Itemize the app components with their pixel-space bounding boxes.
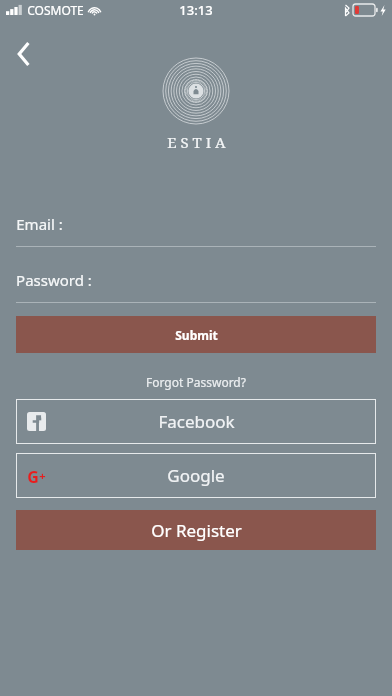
- button[interactable]: Back: [2, 34, 46, 74]
- staticText: E S T I A: [167, 132, 226, 152]
- staticText: Password :: [16, 270, 92, 290]
- staticText: Google: [167, 464, 225, 487]
- staticText: Facebook: [158, 410, 235, 433]
- staticText: +: [39, 468, 46, 483]
- staticText: Forgot Password?: [146, 374, 246, 390]
- staticText: 13:13: [179, 1, 213, 19]
- button[interactable]: Forgot Password?: [138, 372, 254, 392]
- staticText: Email :: [16, 214, 63, 234]
- button[interactable]: Facebook: [16, 399, 376, 444]
- staticText: Submit: [175, 327, 218, 343]
- staticText: G: [27, 466, 39, 485]
- button[interactable]: Submit: [16, 316, 376, 353]
- button[interactable]: G: [16, 453, 376, 498]
- staticText: Or Register: [151, 519, 242, 542]
- staticText: COSMOTE: [27, 2, 84, 18]
- button[interactable]: Or Register: [16, 510, 376, 550]
